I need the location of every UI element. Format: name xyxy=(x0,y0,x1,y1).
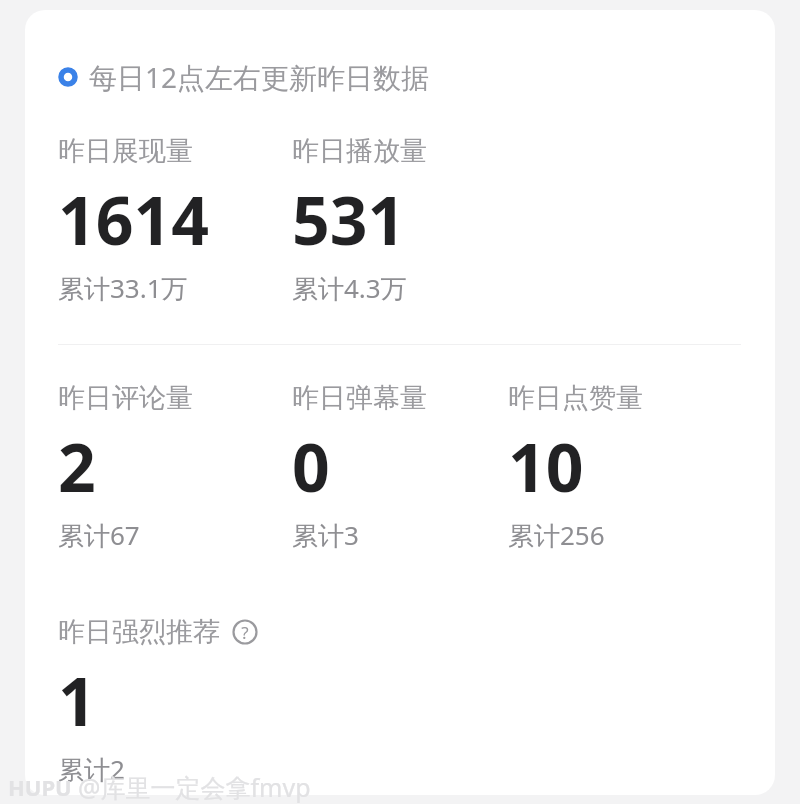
button[interactable]: 昨日播放量 xyxy=(292,134,508,306)
staticText: @库里一定会拿fmvp xyxy=(78,770,311,804)
staticText: 2 xyxy=(58,421,96,511)
staticText: 0 xyxy=(292,421,330,511)
staticText: 累计3 xyxy=(292,517,359,553)
button[interactable]: 昨日强烈推荐 xyxy=(58,615,292,787)
button[interactable]: 昨日点赞量 xyxy=(508,381,728,553)
staticText: 累计256 xyxy=(508,517,605,553)
button[interactable]: 每日12点左右更新昨日数据 xyxy=(58,58,742,96)
staticText: 昨日评论量 xyxy=(58,381,193,415)
staticText: ? xyxy=(241,621,249,644)
staticText: 531 xyxy=(292,174,406,264)
staticText: 1 xyxy=(58,655,96,745)
staticText: 每日12点左右更新昨日数据 xyxy=(89,58,430,96)
staticText: 昨日强烈推荐 xyxy=(58,615,220,649)
staticText: 10 xyxy=(508,421,584,511)
staticText: 昨日点赞量 xyxy=(508,381,643,415)
staticText: 累计2 xyxy=(58,751,125,787)
button[interactable]: 昨日评论量 xyxy=(58,381,292,553)
staticText: 累计67 xyxy=(58,517,140,553)
staticText: 累计33.1万 xyxy=(58,270,188,306)
staticText: 昨日播放量 xyxy=(292,134,427,168)
staticText: 昨日展现量 xyxy=(58,134,193,168)
staticText: 累计4.3万 xyxy=(292,270,407,306)
staticText: 1614 xyxy=(58,174,210,264)
staticText: 昨日弹幕量 xyxy=(292,381,427,415)
button[interactable]: Help about 强烈推荐 xyxy=(232,619,258,645)
button[interactable]: 昨日弹幕量 xyxy=(292,381,508,553)
button[interactable]: 昨日展现量 xyxy=(58,134,292,306)
staticText: HUPU xyxy=(8,772,72,802)
